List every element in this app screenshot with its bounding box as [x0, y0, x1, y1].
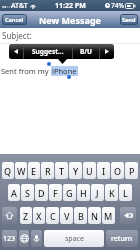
- button[interactable]: K: [105, 184, 118, 201]
- staticText: B: [78, 210, 84, 222]
- button[interactable]: E: [28, 162, 40, 179]
- button[interactable]: Y: [69, 162, 82, 179]
- staticText: C: [50, 210, 56, 222]
- button[interactable]: L: [119, 184, 132, 201]
- button[interactable]: Cancel: [2, 14, 27, 25]
- button[interactable]: Change keyboard: [19, 230, 29, 247]
- staticText: M: [104, 210, 113, 222]
- staticText: 123: [3, 234, 16, 244]
- staticText: Q: [4, 165, 12, 177]
- staticText: I: [102, 165, 106, 177]
- button[interactable]: Suggest...: [24, 44, 72, 59]
- button[interactable]: Previous: [9, 44, 23, 59]
- button[interactable]: F: [49, 184, 62, 201]
- staticText: K: [109, 187, 115, 199]
- staticText: L: [123, 187, 128, 199]
- button[interactable]: Dictation: [31, 230, 42, 247]
- staticText: Subject:: [2, 30, 32, 41]
- staticText: D: [38, 187, 45, 199]
- staticText: E: [31, 165, 37, 177]
- button[interactable]: A: [8, 184, 20, 201]
- button[interactable]: P: [125, 162, 138, 179]
- staticText: P: [129, 165, 135, 177]
- button[interactable]: B/U: [73, 44, 99, 59]
- button[interactable]: Q: [2, 162, 14, 179]
- button[interactable]: Z: [20, 207, 32, 224]
- staticText: Y: [73, 165, 79, 177]
- staticText: S: [25, 187, 30, 199]
- button[interactable]: Return: [106, 230, 138, 247]
- button[interactable]: B: [74, 207, 87, 224]
- button[interactable]: S: [21, 184, 34, 201]
- staticText: U: [86, 165, 93, 177]
- button[interactable]: Shift: [2, 207, 17, 224]
- button[interactable]: Next: [100, 44, 114, 59]
- staticText: Z: [23, 210, 29, 222]
- button[interactable]: space: [44, 230, 104, 247]
- staticText: Send: [122, 16, 136, 23]
- staticText: W: [17, 165, 26, 177]
- staticText: Sent from my: [1, 66, 49, 76]
- staticText: F: [53, 187, 58, 199]
- staticText: J: [96, 187, 99, 199]
- staticText: New Message: [39, 14, 101, 26]
- button[interactable]: W: [15, 162, 27, 179]
- staticText: G: [66, 187, 73, 199]
- button[interactable]: G: [63, 184, 76, 201]
- staticText: space: [65, 234, 84, 244]
- button[interactable]: Numbers: [2, 230, 17, 247]
- button[interactable]: I: [97, 162, 110, 179]
- button[interactable]: N: [88, 207, 101, 224]
- staticText: Cancel: [5, 16, 24, 23]
- button[interactable]: Delete: [120, 207, 136, 224]
- staticText: V: [64, 210, 70, 222]
- button[interactable]: T: [55, 162, 68, 179]
- staticText: AT&T: [11, 1, 28, 11]
- button[interactable]: D: [35, 184, 48, 201]
- staticText: A: [11, 187, 17, 199]
- staticText: return: [111, 234, 133, 244]
- staticText: H: [80, 187, 87, 199]
- staticText: O: [114, 165, 122, 177]
- button[interactable]: U: [83, 162, 96, 179]
- staticText: X: [36, 210, 42, 222]
- button[interactable]: M: [102, 207, 115, 224]
- staticText: T: [59, 165, 65, 177]
- staticText: 11:22 PM: [55, 1, 86, 11]
- staticText: R: [45, 165, 51, 177]
- staticText: 74%: [111, 1, 124, 10]
- button[interactable]: Send: [120, 14, 138, 25]
- button[interactable]: X: [33, 207, 45, 224]
- button[interactable]: V: [60, 207, 73, 224]
- button[interactable]: C: [46, 207, 59, 224]
- staticText: N: [91, 210, 98, 222]
- button[interactable]: O: [111, 162, 124, 179]
- staticText: iPhone: [52, 66, 77, 76]
- staticText: Suggest...: [32, 47, 64, 56]
- button[interactable]: H: [77, 184, 90, 201]
- staticText: B/U: [80, 47, 92, 56]
- button[interactable]: J: [91, 184, 104, 201]
- button[interactable]: R: [41, 162, 54, 179]
